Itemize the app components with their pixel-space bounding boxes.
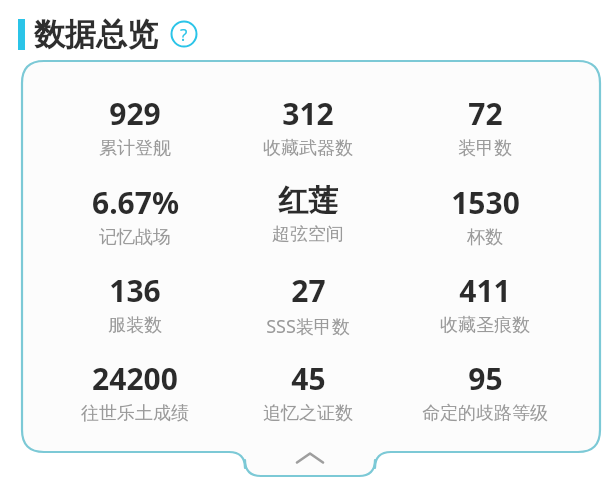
button[interactable]: 1530 [401, 182, 569, 249]
button[interactable]: 411 [401, 270, 569, 337]
staticText: 装甲数 [458, 137, 512, 160]
staticText: 超弦空间 [272, 223, 344, 246]
button[interactable]: 929 [51, 93, 219, 160]
button[interactable]: 24200 [51, 358, 219, 425]
staticText: 27 [291, 270, 326, 311]
staticText: SSS装甲数 [266, 314, 350, 339]
button[interactable]: 45 [224, 358, 392, 425]
staticText: 45 [291, 358, 326, 399]
button[interactable] [0, 0, 614, 483]
staticText: 记忆战场 [99, 226, 171, 249]
staticText: 追忆之证数 [263, 402, 353, 425]
staticText: ? [180, 23, 188, 46]
staticText: 杯数 [467, 226, 503, 249]
staticText: 411 [459, 270, 511, 311]
button[interactable]: 72 [401, 93, 569, 160]
staticText: 24200 [92, 358, 178, 399]
button[interactable]: 27 [224, 270, 392, 339]
staticText: 命定的歧路等级 [422, 402, 548, 425]
staticText: 往世乐土成绩 [81, 402, 189, 425]
staticText: 收藏武器数 [263, 137, 353, 160]
staticText: 红莲 [278, 182, 338, 220]
button[interactable]: 帮助 [169, 19, 199, 49]
staticText: 收藏圣痕数 [440, 314, 530, 337]
button[interactable]: 6.67% [51, 182, 219, 249]
button[interactable]: 红莲 [224, 182, 392, 246]
staticText: 136 [109, 270, 161, 311]
button[interactable]: 312 [224, 93, 392, 160]
button[interactable]: 136 [51, 270, 219, 337]
staticText: 累计登舰 [99, 137, 171, 160]
staticText: 数据总览 [34, 15, 158, 54]
button[interactable]: 95 [401, 358, 569, 425]
staticText: 312 [282, 93, 334, 134]
staticText: 服装数 [108, 314, 162, 337]
staticText: 929 [109, 93, 161, 134]
staticText: 6.67% [92, 182, 179, 223]
staticText: 1530 [451, 182, 520, 223]
staticText: 72 [468, 93, 503, 134]
staticText: 95 [468, 358, 503, 399]
